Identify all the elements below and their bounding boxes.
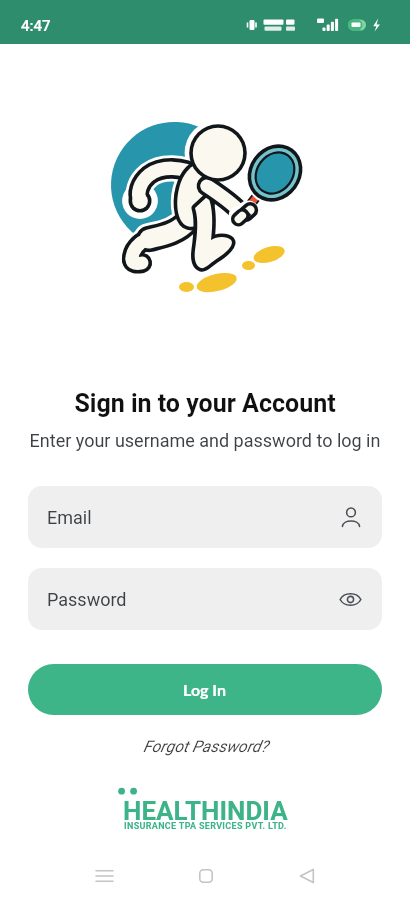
button[interactable]: Home — [155, 853, 256, 899]
staticText: Email — [47, 507, 340, 528]
button[interactable]: Forgot Password? — [0, 737, 410, 756]
staticText: Sign in to your Account — [0, 389, 410, 418]
other: Show password — [339, 588, 362, 611]
staticText: HEALTHINDIA — [123, 796, 288, 826]
button[interactable]: Log In — [28, 664, 382, 715]
button[interactable]: Email — [28, 486, 382, 548]
button[interactable]: Password — [28, 568, 382, 630]
staticText: Log In — [183, 680, 227, 699]
staticText: Enter your username and password to log … — [0, 430, 410, 451]
staticText: Password — [47, 589, 339, 610]
other: Username — [340, 506, 362, 528]
staticText: Forgot Password? — [143, 737, 268, 756]
button[interactable]: Back — [256, 853, 357, 899]
staticText: 4:47 — [21, 17, 51, 35]
staticText: INSURANCE TPA SERVICES PVT. LTD. — [124, 821, 287, 832]
button[interactable]: Recent apps — [54, 853, 155, 899]
